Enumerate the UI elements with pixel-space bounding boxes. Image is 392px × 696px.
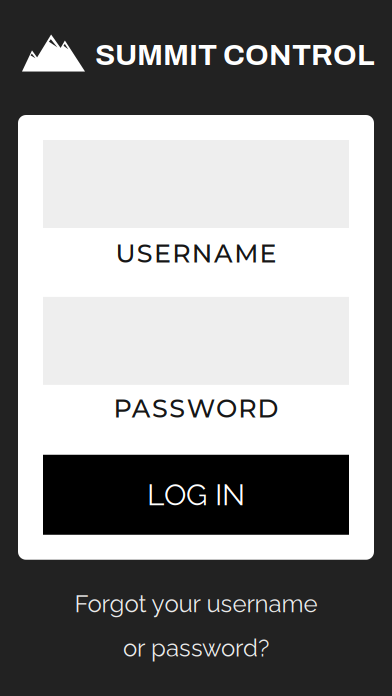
staticText: Forgot your username <box>74 590 317 618</box>
button[interactable]: Forgot your username <box>0 590 392 662</box>
staticText: USERNAME <box>115 238 277 269</box>
button[interactable]: LOG IN <box>43 455 349 535</box>
staticText: LOG IN <box>147 477 245 512</box>
staticText: SUMMIT CONTROL <box>95 39 375 71</box>
staticText: PASSWORD <box>113 393 279 424</box>
staticText: or password? <box>123 634 269 662</box>
